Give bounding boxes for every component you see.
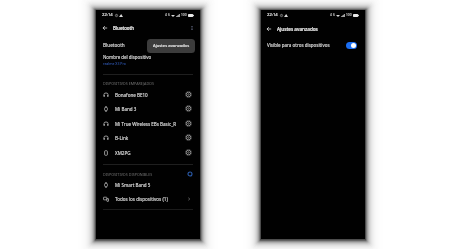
button[interactable]: Back [99, 22, 110, 33]
button[interactable]: Back [96, 21, 200, 34]
staticText: 100 [181, 13, 187, 17]
button[interactable]: Bluetooth [103, 39, 193, 50]
button[interactable]: Nombre del dispositivo [103, 54, 193, 66]
button[interactable]: Visible para otros dispositivos [346, 42, 357, 49]
staticText: Mi Band 3 [115, 106, 137, 112]
button[interactable]: Back [264, 24, 274, 34]
staticText: Ajustes avanzados [153, 43, 190, 49]
staticText: 22:14 [267, 12, 278, 18]
button[interactable]: Visible para otros dispositivos [267, 38, 357, 52]
button[interactable]: Mi Band 3 [102, 101, 193, 116]
staticText: 6 [168, 13, 170, 17]
staticText: Bonafone BE10 [115, 92, 148, 98]
button[interactable]: B-Link [102, 130, 193, 145]
staticText: Nombre del dispositivo [103, 54, 152, 60]
staticText: realme X3 Pro [103, 61, 126, 66]
staticText: Bluetooth [113, 25, 135, 31]
staticText: Ajustes avanzados [277, 26, 318, 32]
staticText: Mi True Wireless EBs Basic_R [115, 121, 176, 127]
button[interactable]: Mi True Wireless EBs Basic_R [102, 116, 193, 131]
button[interactable]: Device settings [184, 90, 193, 99]
staticText: Visible para otros dispositivos [267, 42, 330, 48]
staticText: XM2PG [115, 150, 131, 156]
button[interactable]: Back [261, 22, 365, 35]
staticText: Mi Smart Band 5 [115, 182, 151, 188]
button[interactable]: XM2PG [102, 145, 193, 160]
button[interactable]: Bonafone BE10 [102, 87, 193, 102]
staticText: 4 [165, 13, 167, 17]
button[interactable]: Mi Smart Band 5 [102, 177, 193, 192]
staticText: DISPOSITIVOS EMPAREJADOS [103, 81, 155, 86]
button[interactable]: Device settings [184, 148, 193, 157]
button[interactable]: More options [186, 22, 198, 34]
staticText: 100 [346, 13, 352, 17]
button[interactable]: Device settings [184, 104, 193, 113]
staticText: DISPOSITIVOS DISPONIBLES [103, 172, 153, 177]
staticText: Bluetooth [103, 42, 125, 48]
button[interactable]: Device settings [184, 119, 193, 128]
staticText: Todos los dispositivos (1) [115, 196, 168, 202]
button[interactable]: Todos los dispositivos (1) [102, 191, 193, 206]
button[interactable]: Ajustes avanzados [147, 39, 195, 53]
staticText: 6 [333, 13, 335, 17]
staticText: 4 [330, 13, 332, 17]
staticText: 22:14 [102, 12, 113, 18]
staticText: B-Link [115, 135, 129, 141]
button[interactable]: Device settings [184, 133, 193, 142]
